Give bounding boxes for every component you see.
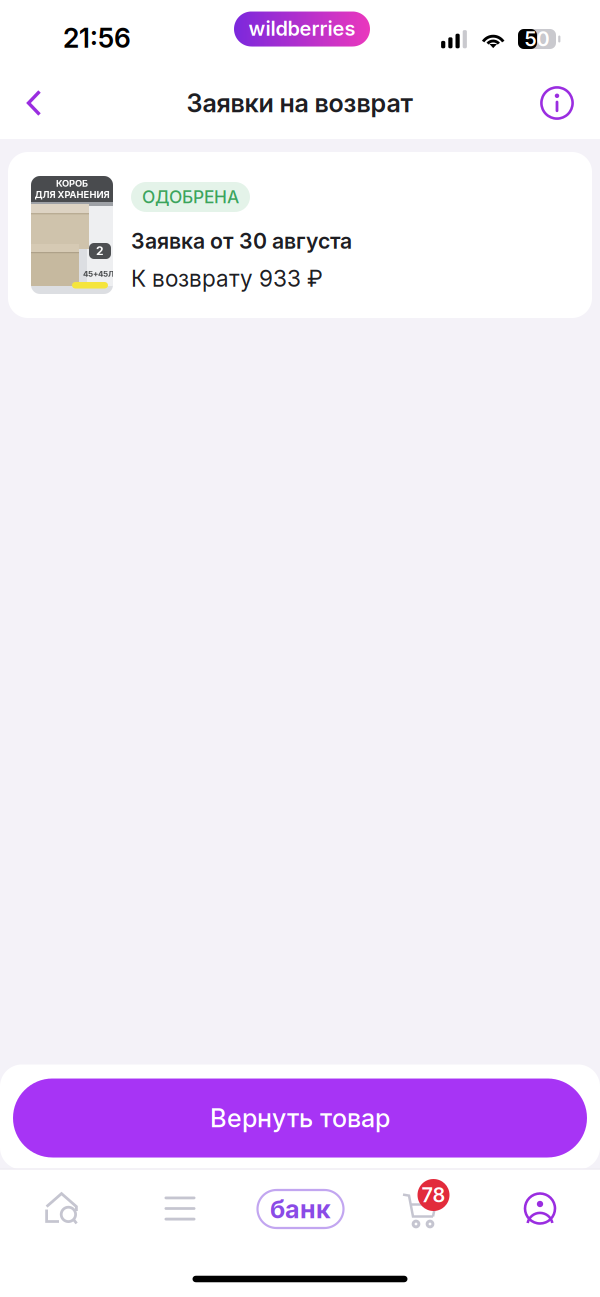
staticText: ДЛЯ ХРАНЕНИЯ: [34, 189, 109, 200]
button[interactable]: Каталог: [134, 1175, 226, 1241]
staticText: КОРОБ: [56, 178, 88, 189]
staticText: Заявка от 30 августа: [131, 228, 352, 254]
staticText: ОДОБРЕНА: [142, 186, 239, 207]
button[interactable]: Профиль: [494, 1175, 586, 1241]
button[interactable]: Главная: [15, 1175, 107, 1241]
staticText: 2: [96, 244, 104, 258]
button[interactable]: Вернуть товар: [13, 1078, 587, 1157]
button[interactable]: Корзина: [374, 1175, 466, 1241]
staticText: wildberries: [248, 16, 355, 41]
staticText: К возврату 933 ₽: [131, 265, 323, 292]
button[interactable]: Информация: [529, 75, 585, 131]
staticText: банк: [270, 1194, 331, 1224]
button[interactable]: Назад: [4, 75, 64, 131]
button[interactable]: КОРОБ: [8, 152, 592, 318]
button[interactable]: Банк: [250, 1176, 350, 1242]
staticText: 50: [524, 27, 549, 51]
staticText: 45+45Л: [83, 269, 114, 279]
staticText: 21:56: [63, 22, 131, 54]
staticText: Заявки на возврат: [186, 88, 413, 118]
staticText: Вернуть товар: [210, 1103, 390, 1133]
staticText: 78: [421, 1183, 445, 1207]
